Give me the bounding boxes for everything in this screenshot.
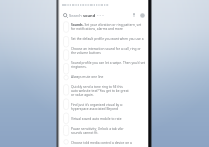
staticText: Set the default profile you want when yo…	[71, 37, 146, 41]
staticText: Search	[69, 13, 83, 18]
staticText: sound	[83, 13, 96, 18]
staticText: ringtones.	[71, 65, 87, 69]
staticText: • • •	[96, 13, 104, 18]
button[interactable]: Sounds. Set your vibration or ring patte…	[59, 20, 148, 34]
button[interactable]: Quickly send a tone ring to fill this	[59, 82, 148, 100]
staticText: Sounds. Set your vibration or ring patte…	[71, 23, 146, 27]
button[interactable]: Choose told media control a device on a …	[59, 138, 148, 147]
staticText: Choose told media control a device on a …	[71, 141, 146, 144]
button[interactable]: Find just it's organised visual by a:	[59, 100, 148, 114]
staticText: Find just it's organised visual by a:	[71, 103, 123, 107]
staticText: Choose an interaction sound for a call, …	[71, 47, 146, 51]
button[interactable]: Sound profile you can let a swipe. Then …	[59, 58, 148, 72]
button[interactable]: Virtual sound auto mobile to rate	[59, 114, 148, 124]
button[interactable]: Set the default profile you want when yo…	[59, 34, 148, 44]
button[interactable]: Pause sensitivity; Unlock a tab vibr	[59, 124, 148, 138]
button[interactable]: Voice search	[130, 11, 138, 19]
staticText: Virtual sound auto mobile to rate	[71, 117, 122, 121]
staticText: hyperspace associated Beyond	[71, 107, 118, 111]
button[interactable]: Always mute one line	[59, 72, 148, 82]
button[interactable]: Account	[138, 11, 146, 19]
button[interactable]: Search	[61, 11, 69, 19]
staticText: for notifications, alarms and more	[71, 27, 123, 31]
staticText: Pause sensitivity; Unlock a tab vibr	[71, 127, 124, 131]
staticText: Always mute one line	[71, 75, 104, 79]
staticText: or value again.	[71, 93, 94, 97]
staticText: Quickly send a tone ring to fill this	[71, 85, 123, 89]
staticText: the volume buttons	[71, 51, 101, 55]
staticText: auto website text? You get to be great	[71, 89, 129, 93]
staticText: sounds cannot fit.	[71, 131, 99, 135]
staticText: Sound profile you can let a swipe. Then …	[71, 61, 146, 65]
button[interactable]: Choose an interaction sound for a call, …	[59, 44, 148, 58]
